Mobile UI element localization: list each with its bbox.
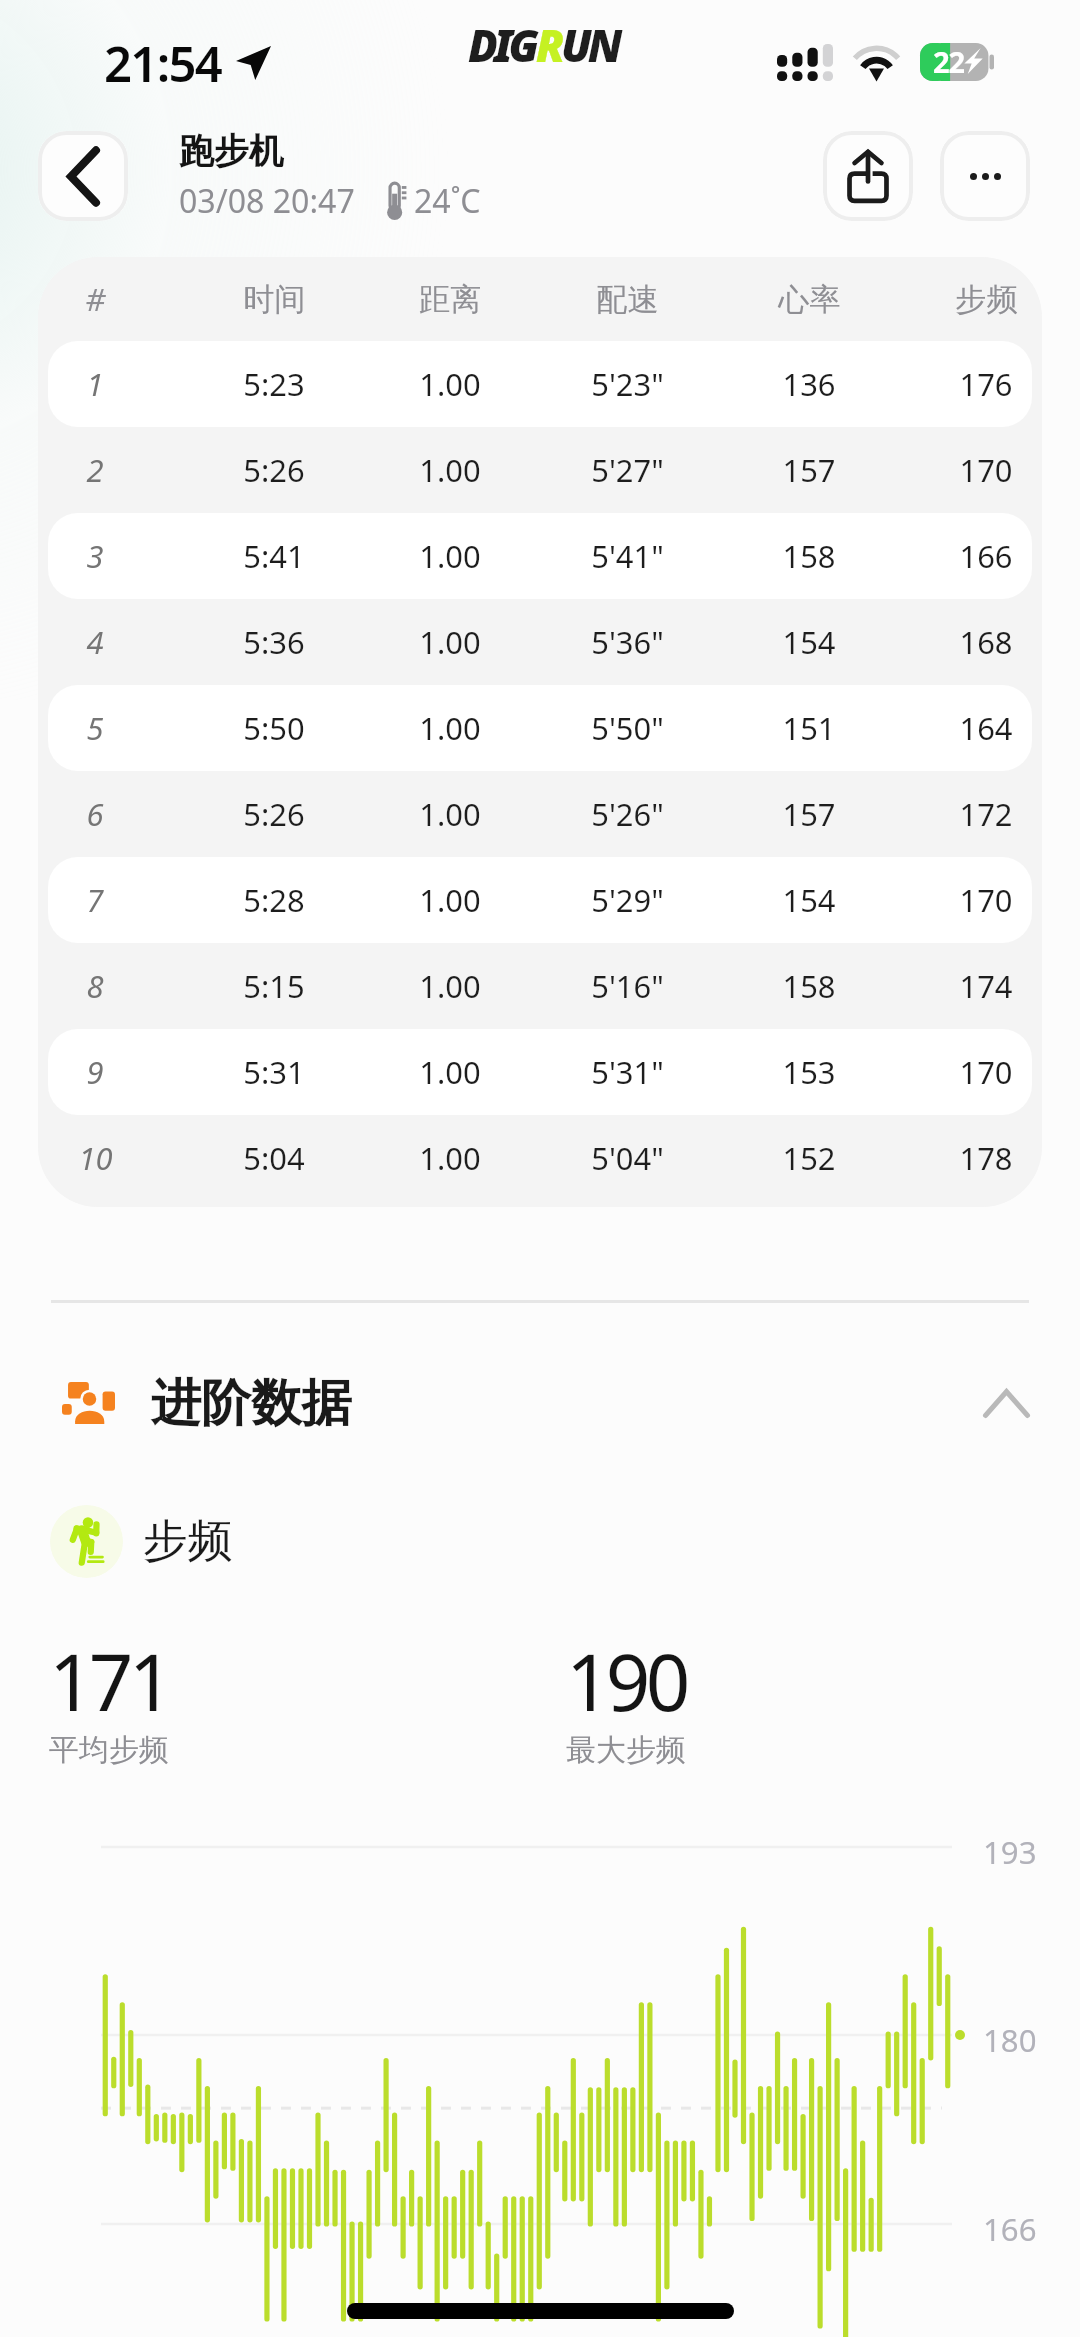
staticText: 5:50	[243, 707, 305, 749]
staticText: 157	[782, 449, 836, 491]
button[interactable]: 7	[48, 857, 1032, 943]
staticText: 5:31	[243, 1051, 305, 1093]
button[interactable]: 进阶数据	[62, 1337, 1030, 1469]
staticText: 5	[86, 707, 104, 749]
staticText: 5:26	[243, 793, 305, 835]
staticText: 5'23"	[591, 363, 664, 405]
staticText: 5'27"	[591, 449, 664, 491]
staticText: 1.00	[419, 535, 481, 577]
staticText: 6	[86, 793, 104, 835]
staticText: 5:04	[243, 1137, 305, 1179]
staticText: 180	[983, 2019, 1037, 2061]
staticText: 1.00	[419, 1137, 481, 1179]
staticText: 5:23	[243, 363, 305, 405]
staticText: 5'36"	[591, 621, 664, 663]
staticText: 步频	[955, 280, 1018, 319]
staticText: 190	[566, 1628, 686, 1734]
staticText: 193	[983, 1831, 1037, 1873]
staticText: 配速	[596, 280, 659, 319]
staticText: 跑步机	[179, 129, 284, 173]
staticText: 1.00	[419, 1051, 481, 1093]
staticText: 03/08 20:47	[179, 179, 355, 223]
button[interactable]: 4	[48, 599, 1032, 685]
staticText: 5'26"	[591, 793, 664, 835]
staticText: 进阶数据	[151, 1372, 352, 1435]
staticText: 4	[86, 621, 104, 663]
staticText: 5'31"	[591, 1051, 664, 1093]
staticText: 1	[86, 363, 104, 405]
staticText: 1.00	[419, 363, 481, 405]
staticText: 5'41"	[591, 535, 664, 577]
staticText: 22	[933, 42, 964, 80]
staticText: 10	[78, 1137, 113, 1179]
staticText: 172	[959, 793, 1013, 835]
staticText: 24˚C	[414, 179, 481, 223]
staticText: 3	[86, 535, 104, 577]
staticText: 7	[86, 879, 104, 921]
staticText: 170	[959, 1051, 1013, 1093]
staticText: 最大步频	[566, 1731, 686, 1769]
staticText: 166	[983, 2208, 1037, 2250]
staticText: 21:54	[104, 30, 222, 97]
staticText: 174	[959, 965, 1013, 1007]
staticText: 136	[782, 363, 836, 405]
staticText: 170	[959, 449, 1013, 491]
staticText: DIG	[468, 15, 536, 75]
staticText: 152	[782, 1137, 836, 1179]
staticText: 5:36	[243, 621, 305, 663]
button[interactable]: Share	[823, 131, 913, 221]
staticText: 154	[782, 879, 836, 921]
staticText: 176	[959, 363, 1013, 405]
staticText: 1.00	[419, 793, 481, 835]
staticText: 1.00	[419, 621, 481, 663]
staticText: R	[536, 15, 561, 75]
staticText: #	[85, 278, 106, 320]
staticText: 158	[782, 965, 836, 1007]
button[interactable]: 3	[48, 513, 1032, 599]
staticText: 2	[86, 449, 104, 491]
staticText: 168	[959, 621, 1013, 663]
staticText: 5'16"	[591, 965, 664, 1007]
staticText: 5'29"	[591, 879, 664, 921]
staticText: 5'50"	[591, 707, 664, 749]
staticText: 178	[959, 1137, 1013, 1179]
button[interactable]: 5	[48, 685, 1032, 771]
button[interactable]: 2	[48, 427, 1032, 513]
staticText: 166	[959, 535, 1013, 577]
staticText: 158	[782, 535, 836, 577]
staticText: 时间	[243, 280, 306, 319]
button[interactable]: 10	[48, 1115, 1032, 1201]
staticText: 5:41	[243, 535, 305, 577]
staticText: 171	[49, 1628, 169, 1734]
staticText: 5:28	[243, 879, 305, 921]
button[interactable]: 8	[48, 943, 1032, 1029]
staticText: 心率	[778, 280, 841, 319]
staticText: 1.00	[419, 707, 481, 749]
staticText: 9	[86, 1051, 104, 1093]
staticText: 8	[86, 965, 104, 1007]
staticText: 1.00	[419, 449, 481, 491]
staticText: 1.00	[419, 965, 481, 1007]
staticText: 164	[959, 707, 1013, 749]
staticText: UN	[561, 15, 619, 75]
staticText: 5:15	[243, 965, 305, 1007]
button[interactable]: More options	[940, 131, 1030, 221]
staticText: 170	[959, 879, 1013, 921]
staticText: 151	[782, 707, 836, 749]
staticText: 5:26	[243, 449, 305, 491]
staticText: 153	[782, 1051, 836, 1093]
staticText: 5'04"	[591, 1137, 664, 1179]
button[interactable]: 1	[48, 341, 1032, 427]
button[interactable]: 6	[48, 771, 1032, 857]
staticText: 1.00	[419, 879, 481, 921]
staticText: 步频	[143, 1513, 233, 1569]
staticText: 平均步频	[49, 1731, 169, 1769]
button[interactable]: Back	[38, 131, 128, 221]
button[interactable]: 9	[48, 1029, 1032, 1115]
staticText: 157	[782, 793, 836, 835]
staticText: 154	[782, 621, 836, 663]
staticText: 距离	[419, 280, 482, 319]
